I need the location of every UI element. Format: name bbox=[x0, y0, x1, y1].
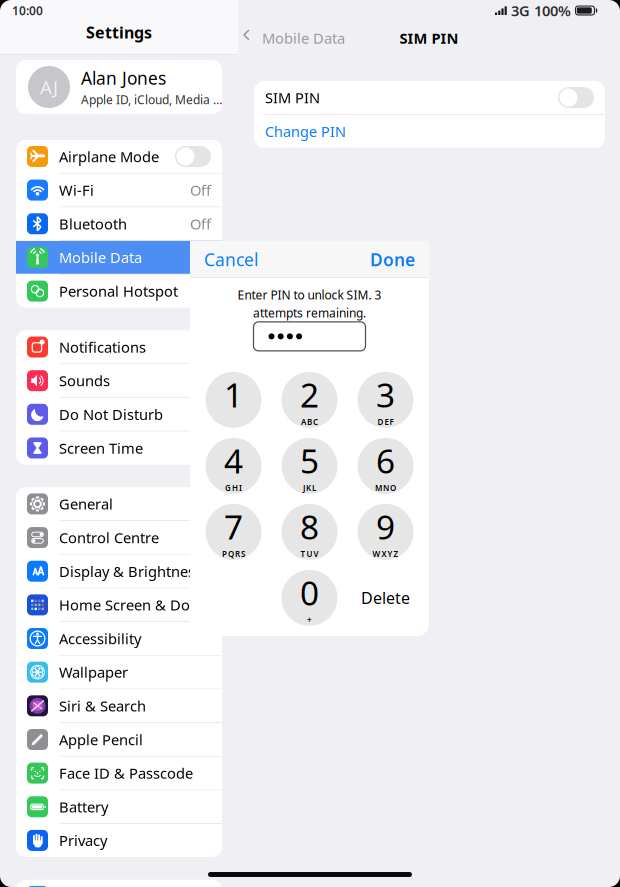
button[interactable]: Delete bbox=[357, 570, 413, 626]
staticText: G H I bbox=[225, 483, 242, 493]
button[interactable]: App Store bbox=[16, 880, 222, 887]
button[interactable]: Face ID & Passcode bbox=[16, 757, 222, 790]
button[interactable]: Cancel bbox=[204, 239, 258, 280]
button[interactable]: 8 bbox=[281, 504, 337, 560]
staticText: Change PIN bbox=[265, 121, 346, 141]
button[interactable]: Notifications bbox=[16, 331, 222, 364]
button[interactable]: Battery bbox=[16, 790, 222, 823]
button[interactable]: Wi-Fi bbox=[16, 174, 222, 207]
button[interactable]: Done bbox=[370, 239, 415, 280]
staticText: 7 bbox=[224, 504, 243, 549]
staticText: Home Screen & Dock bbox=[59, 595, 205, 615]
button[interactable]: Do Not Disturb bbox=[16, 398, 222, 431]
button[interactable]: 2 bbox=[281, 372, 337, 428]
staticText: + bbox=[307, 615, 312, 625]
button[interactable]: 1 bbox=[205, 372, 261, 428]
staticText: Mobile Data bbox=[262, 28, 345, 48]
staticText: Alan Jones bbox=[81, 66, 166, 89]
staticText: M N O bbox=[375, 483, 396, 493]
button[interactable]: Mobile Data bbox=[16, 241, 222, 274]
staticText: Sounds bbox=[59, 371, 110, 390]
button[interactable]: Sounds bbox=[16, 364, 222, 397]
staticText: Off bbox=[190, 180, 211, 200]
staticText: Accessibility bbox=[59, 629, 141, 648]
staticText: Done bbox=[370, 248, 415, 271]
staticText: Do Not Disturb bbox=[59, 405, 163, 424]
staticText: SIM PIN bbox=[399, 28, 458, 48]
button[interactable]: 7 bbox=[205, 504, 261, 560]
button[interactable]: Display & Brightness bbox=[16, 555, 222, 588]
staticText: Face ID & Passcode bbox=[59, 763, 193, 783]
button[interactable]: SIM PIN bbox=[254, 81, 605, 114]
staticText: Control Centre bbox=[59, 528, 159, 547]
staticText: J K L bbox=[303, 483, 316, 493]
staticText: Airplane Mode bbox=[59, 147, 159, 166]
button[interactable]: 4 bbox=[205, 438, 261, 494]
button[interactable]: General bbox=[16, 487, 222, 520]
staticText: Notifications bbox=[59, 337, 146, 357]
staticText: Privacy bbox=[59, 831, 107, 850]
staticText: 1 bbox=[224, 372, 243, 417]
staticText: 5 bbox=[300, 438, 319, 483]
button[interactable]: Accessibility bbox=[16, 622, 222, 655]
staticText: Cancel bbox=[204, 248, 258, 271]
button[interactable]: 3 bbox=[357, 372, 413, 428]
staticText: 6 bbox=[376, 438, 395, 483]
staticText: Wallpaper bbox=[59, 662, 128, 682]
button[interactable]: Siri & Search bbox=[16, 689, 222, 722]
staticText: Apple Pencil bbox=[59, 730, 143, 749]
button[interactable]: Airplane Mode bbox=[16, 140, 222, 173]
staticText: Wi-Fi bbox=[59, 180, 94, 200]
staticText: Bluetooth bbox=[59, 214, 127, 233]
button[interactable]: Personal Hotspot bbox=[16, 275, 222, 308]
button[interactable]: 6 bbox=[357, 438, 413, 494]
staticText: Apple ID, iCloud, Media &… bbox=[81, 91, 222, 107]
staticText: Off bbox=[190, 214, 211, 233]
staticText: 10:00 bbox=[12, 2, 43, 18]
staticText: Screen Time bbox=[59, 438, 143, 458]
staticText: T U V bbox=[300, 549, 318, 559]
staticText: 2 bbox=[300, 372, 319, 417]
button[interactable]: Screen Time bbox=[16, 431, 222, 464]
staticText: Enter PIN to unlock SIM. 3 bbox=[237, 287, 381, 303]
staticText: W X Y Z bbox=[372, 549, 398, 559]
staticText: Display & Brightness bbox=[59, 561, 202, 581]
staticText: A B C bbox=[301, 417, 318, 427]
button[interactable]: Bluetooth bbox=[16, 207, 222, 240]
staticText: 4 bbox=[224, 438, 243, 483]
staticText: P Q R S bbox=[222, 549, 245, 559]
staticText: Mobile Data bbox=[59, 248, 142, 267]
staticText: AJ bbox=[40, 75, 58, 99]
button[interactable]: Apple Pencil bbox=[16, 723, 222, 756]
button[interactable]: Privacy bbox=[16, 824, 222, 857]
button[interactable]: 9 bbox=[357, 504, 413, 560]
button[interactable]: Wallpaper bbox=[16, 656, 222, 689]
staticText: 8 bbox=[300, 504, 319, 549]
staticText: Settings bbox=[86, 22, 152, 43]
button[interactable]: Mobile Data bbox=[238, 24, 345, 52]
staticText: General bbox=[59, 494, 113, 514]
staticText: 3 bbox=[376, 372, 395, 417]
button[interactable]: Home Screen & Dock bbox=[16, 588, 222, 621]
button[interactable]: Change PIN bbox=[254, 115, 605, 148]
button[interactable]: AJ bbox=[16, 60, 222, 114]
staticText: 9 bbox=[376, 504, 395, 549]
staticText: 0 bbox=[300, 570, 319, 615]
staticText: attempts remaining. bbox=[253, 305, 366, 321]
staticText: Siri & Search bbox=[59, 696, 146, 716]
staticText: 3G 100% bbox=[511, 1, 571, 20]
staticText: D E F bbox=[377, 417, 393, 427]
staticText: Battery bbox=[59, 797, 108, 816]
staticText: SIM PIN bbox=[265, 88, 320, 107]
button[interactable]: Control Centre bbox=[16, 521, 222, 554]
button[interactable]: 5 bbox=[281, 438, 337, 494]
button[interactable]: 0 bbox=[281, 570, 337, 626]
staticText: Delete bbox=[361, 587, 410, 608]
staticText: Personal Hotspot bbox=[59, 281, 178, 301]
